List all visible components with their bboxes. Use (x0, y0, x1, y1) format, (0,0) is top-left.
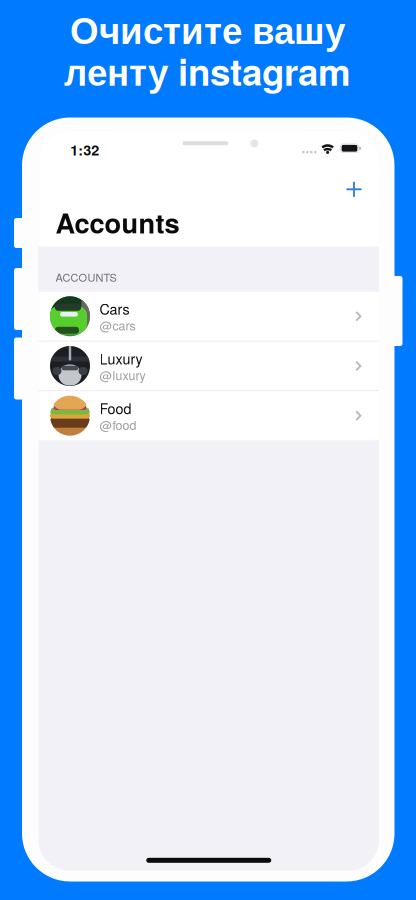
staticText: @luxury (99, 366, 145, 384)
staticText: ACCOUNTS (55, 269, 116, 285)
button[interactable]: Food (38, 391, 379, 440)
staticText: Accounts (55, 203, 179, 242)
button[interactable]: Cars (38, 292, 379, 341)
staticText: @food (99, 416, 136, 434)
staticText: ленту instagram (64, 44, 351, 97)
staticText: Luxury (99, 348, 142, 369)
staticText: Cars (99, 298, 129, 319)
button[interactable]: Add account (337, 174, 371, 204)
staticText: Очистите вашу (70, 11, 345, 52)
staticText: 1:32 (70, 139, 99, 160)
staticText: @cars (99, 316, 135, 334)
staticText: Food (99, 398, 131, 418)
button[interactable]: Luxury (38, 341, 379, 390)
